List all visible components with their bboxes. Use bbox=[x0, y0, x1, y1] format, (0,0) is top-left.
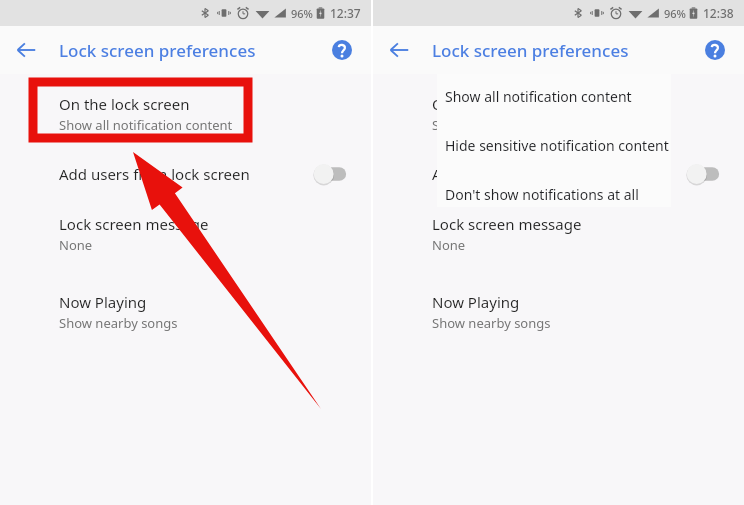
button[interactable]: Now Playing bbox=[373, 284, 744, 340]
staticText: 96% bbox=[291, 6, 313, 21]
button[interactable]: Show all notification content bbox=[437, 74, 671, 106]
button[interactable]: On the lock screen bbox=[0, 86, 371, 142]
staticText: Now Playing bbox=[59, 292, 147, 312]
staticText: Show all notification content bbox=[432, 116, 606, 134]
staticText: Add users from lock screen bbox=[59, 164, 313, 184]
button[interactable]: Now Playing bbox=[0, 284, 371, 340]
button[interactable]: Lock screen message bbox=[373, 206, 744, 262]
staticText: Show nearby songs bbox=[432, 314, 551, 332]
button[interactable]: On the lock screen bbox=[373, 86, 744, 142]
button[interactable]: Help bbox=[698, 33, 732, 67]
staticText: Show nearby songs bbox=[59, 314, 178, 332]
staticText: Lock screen message bbox=[59, 214, 209, 234]
button[interactable]: Lock screen message bbox=[0, 206, 371, 262]
staticText: On the lock screen bbox=[432, 94, 563, 114]
staticText: Lock screen preferences bbox=[59, 39, 256, 62]
staticText: Don't show notifications at all bbox=[445, 185, 639, 204]
staticText: Now Playing bbox=[432, 292, 520, 312]
button[interactable]: Don't show notifications at all bbox=[437, 155, 671, 204]
button[interactable]: Add users from lock screen bbox=[0, 154, 371, 194]
button[interactable]: Hide sensitive notification content bbox=[437, 106, 671, 155]
staticText: Lock screen preferences bbox=[432, 39, 629, 62]
button[interactable]: Add users from lock screen bbox=[373, 154, 744, 194]
staticText: 96% bbox=[664, 6, 686, 21]
staticText: Lock screen message bbox=[432, 214, 582, 234]
staticText: On the lock screen bbox=[59, 94, 190, 114]
staticText: Add users from lock screen bbox=[432, 164, 686, 184]
staticText: Show all notification content bbox=[59, 116, 233, 134]
staticText: Show all notification content bbox=[445, 87, 632, 106]
staticText: 12:38 bbox=[703, 5, 734, 21]
staticText: Hide sensitive notification content bbox=[445, 136, 669, 155]
staticText: None bbox=[59, 236, 93, 254]
staticText: None bbox=[432, 236, 466, 254]
staticText: 12:37 bbox=[330, 5, 361, 21]
button[interactable]: Help bbox=[325, 33, 359, 67]
button[interactable]: Back bbox=[8, 32, 44, 68]
button[interactable]: Back bbox=[381, 32, 417, 68]
